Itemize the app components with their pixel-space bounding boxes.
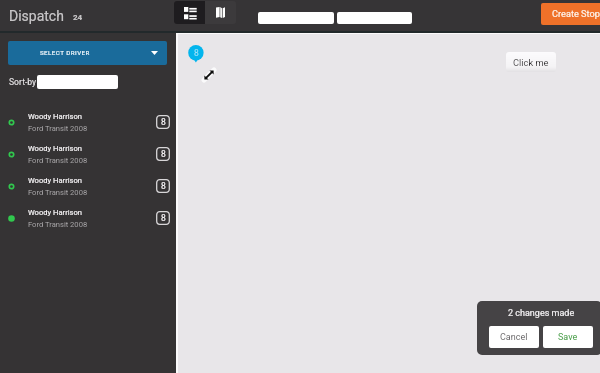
button[interactable]: Stop 8 (188, 45, 204, 63)
staticText: Ford Transit 2008 (28, 188, 88, 197)
button[interactable]: Map view (205, 1, 236, 24)
staticText: Click me (513, 57, 549, 68)
button[interactable]: Cancel (489, 326, 539, 348)
button[interactable]: Search (258, 12, 334, 24)
staticText: Woody Harrison (28, 176, 83, 185)
staticText: 8 (161, 117, 166, 127)
staticText: Woody Harrison (28, 208, 83, 217)
staticText: 8 (161, 149, 166, 159)
button[interactable]: Filter (337, 12, 412, 24)
staticText: Ford Transit 2008 (28, 124, 88, 133)
staticText: Create Stop (552, 8, 600, 19)
button[interactable]: Click me (506, 52, 556, 72)
staticText: Woody Harrison (28, 112, 83, 121)
staticText: 24 (73, 13, 83, 22)
button[interactable]: Save (543, 326, 593, 348)
button[interactable]: Woody Harrison (0, 106, 176, 138)
button[interactable]: Sort by field (37, 75, 118, 89)
staticText: Ford Transit 2008 (28, 156, 88, 165)
staticText: 2 changes made (508, 308, 575, 319)
staticText: 8 (161, 181, 166, 191)
button[interactable]: Woody Harrison (0, 202, 176, 234)
button[interactable]: SELECT DRIVER (8, 41, 167, 65)
button[interactable]: Create Stop (541, 3, 600, 25)
button[interactable]: Woody Harrison (0, 170, 176, 202)
staticText: Sort-by (9, 77, 37, 87)
staticText: 8 (161, 213, 166, 223)
staticText: SELECT DRIVER (40, 49, 90, 56)
other: Resize (203, 69, 215, 81)
staticText: Cancel (500, 332, 528, 343)
button[interactable]: Woody Harrison (0, 138, 176, 170)
staticText: Woody Harrison (28, 144, 83, 153)
button[interactable]: List view (174, 1, 205, 24)
staticText: Dispatch (9, 8, 64, 24)
staticText: Save (558, 332, 578, 343)
staticText: Ford Transit 2008 (28, 220, 88, 229)
staticText: 8 (194, 48, 199, 58)
